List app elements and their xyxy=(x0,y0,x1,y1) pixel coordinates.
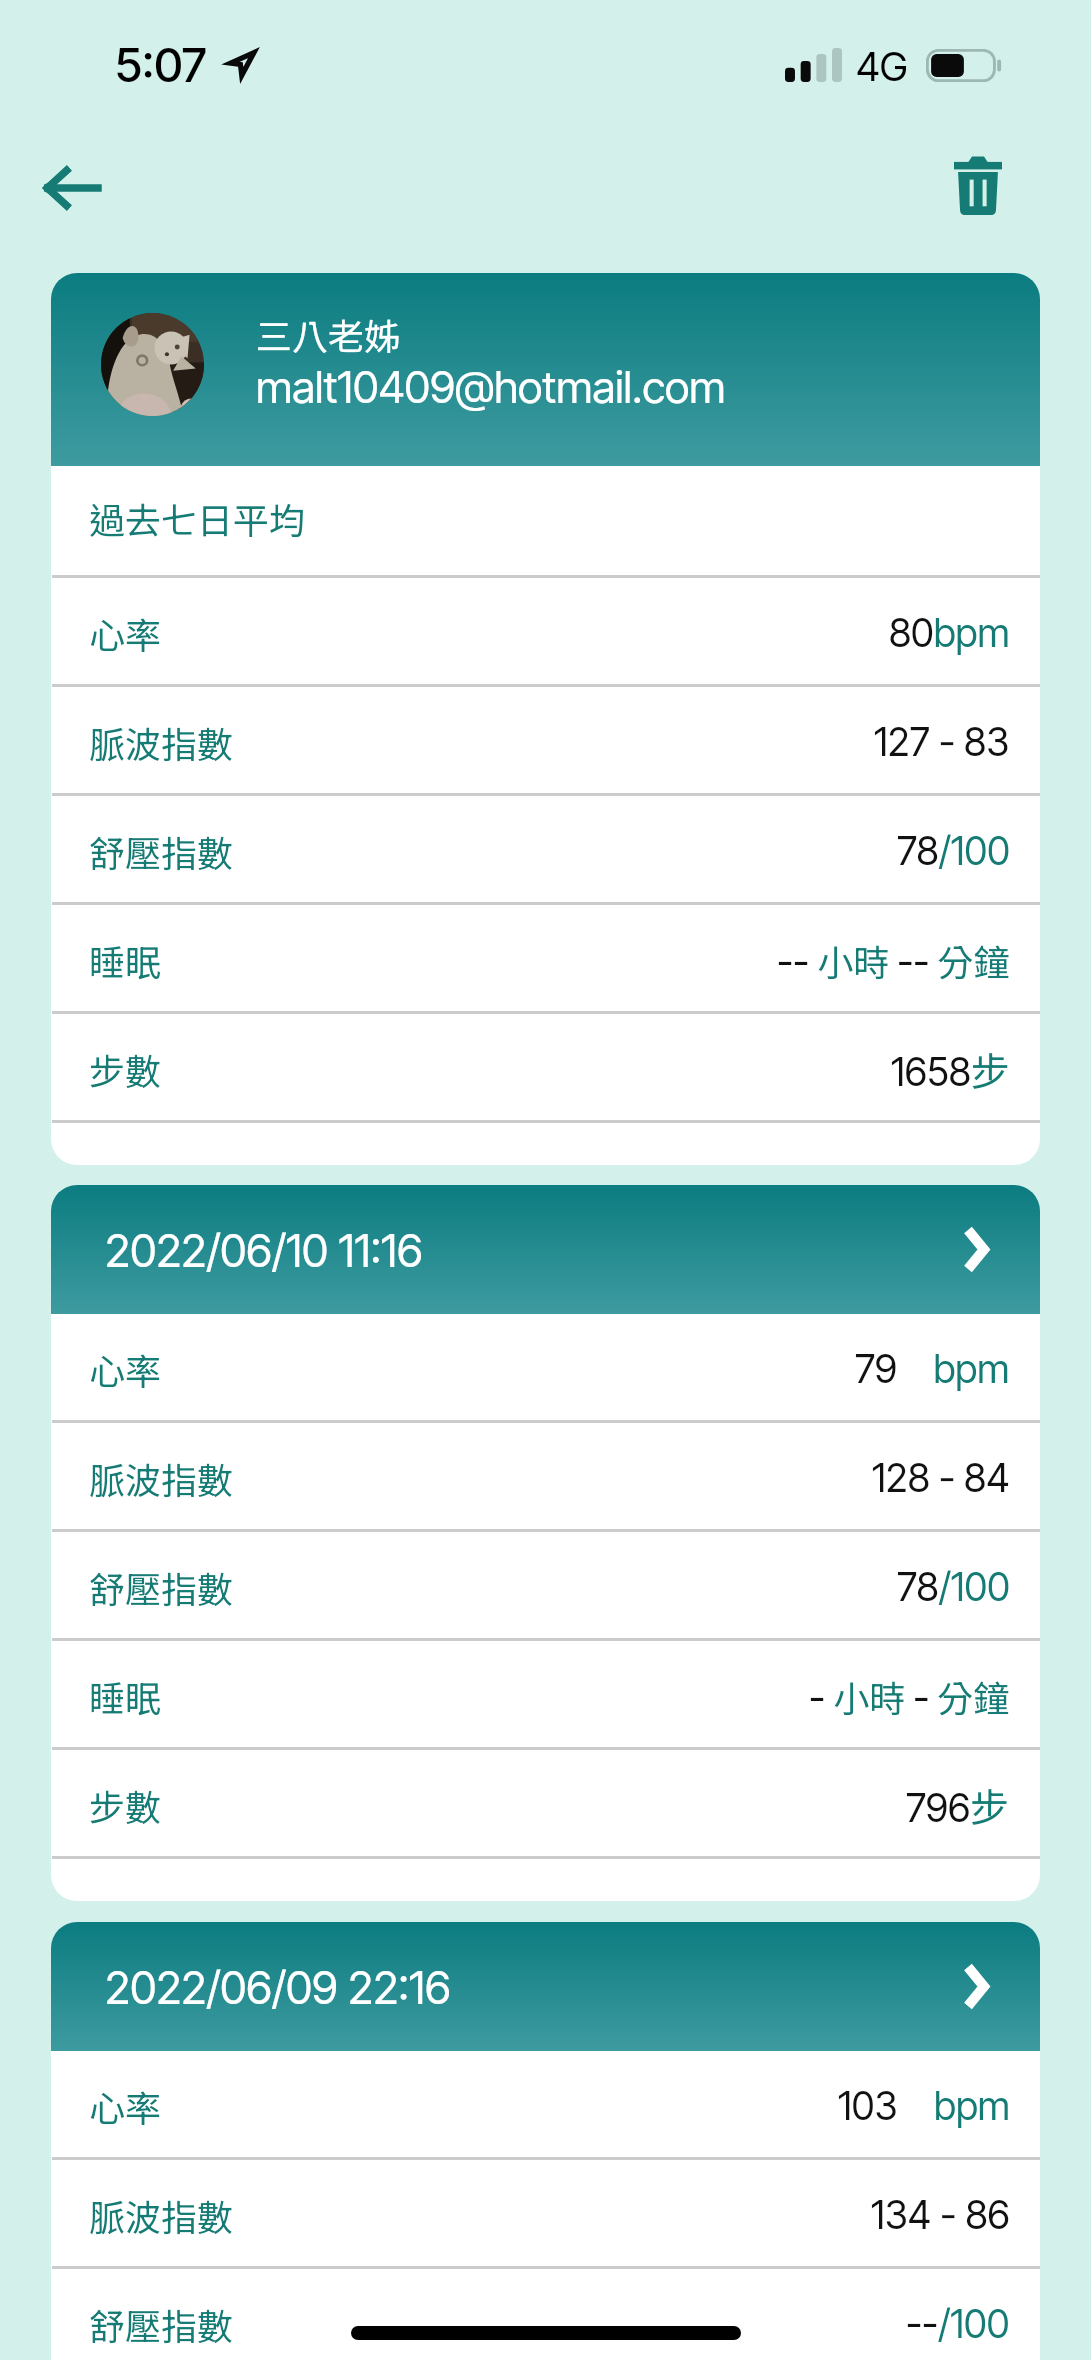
staticText: 1658步 xyxy=(891,1041,1010,1097)
staticText: 脈波指數 xyxy=(89,1452,234,1504)
button[interactable]: 舒壓指數 xyxy=(51,2269,1040,2360)
button[interactable]: 睡眠 xyxy=(51,1641,1040,1750)
button[interactable]: 步數 xyxy=(51,1750,1040,1859)
button[interactable]: 心率 xyxy=(51,1314,1040,1423)
staticText: 心率 xyxy=(89,607,162,659)
staticText: 127 - 83 xyxy=(874,718,1010,765)
staticText: 心率 xyxy=(89,1343,162,1395)
button[interactable]: 舒壓指數 xyxy=(51,1532,1040,1641)
staticText: 步數 xyxy=(89,1043,162,1095)
staticText: 步數 xyxy=(89,1779,162,1831)
staticText: 796步 xyxy=(906,1777,1010,1833)
button[interactable]: 脈波指數 xyxy=(51,687,1040,796)
button[interactable]: 睡眠 xyxy=(51,905,1040,1014)
button[interactable]: 三八老姊 xyxy=(51,273,1040,466)
staticText: 心率 xyxy=(89,2080,162,2132)
staticText: --/100 xyxy=(906,2300,1010,2347)
button[interactable]: Back xyxy=(18,135,124,241)
staticText: 4G xyxy=(856,42,908,90)
staticText: 78/100 xyxy=(897,827,1010,874)
button[interactable]: 2022/06/09 22:16 xyxy=(51,1922,1040,2051)
button[interactable]: 心率 xyxy=(51,578,1040,687)
staticText: 78/100 xyxy=(897,1563,1010,1610)
staticText: 舒壓指數 xyxy=(89,2298,234,2350)
staticText: 脈波指數 xyxy=(89,716,234,768)
staticText: 2022/06/10 11:16 xyxy=(105,1223,423,1277)
staticText: 舒壓指數 xyxy=(89,825,234,877)
staticText: 103 bpm xyxy=(838,2082,1010,2129)
button[interactable]: 2022/06/10 11:16 xyxy=(51,1185,1040,1314)
staticText: malt10409@hotmail.com xyxy=(256,360,726,413)
staticText: 128 - 84 xyxy=(872,1454,1010,1501)
staticText: 脈波指數 xyxy=(89,2189,234,2241)
staticText: 三八老姊 xyxy=(256,308,401,360)
staticText: 睡眠 xyxy=(89,934,162,986)
staticText: 134 - 86 xyxy=(871,2191,1010,2238)
staticText: -- 小時 -- 分鐘 xyxy=(777,934,1010,986)
button[interactable]: 心率 xyxy=(51,2051,1040,2160)
button[interactable]: 脈波指數 xyxy=(51,1423,1040,1532)
staticText: 舒壓指數 xyxy=(89,1561,234,1613)
staticText: - 小時 - 分鐘 xyxy=(809,1670,1010,1722)
button[interactable]: 步數 xyxy=(51,1014,1040,1123)
staticText: 過去七日平均 xyxy=(89,492,306,544)
button[interactable]: Delete xyxy=(933,140,1023,230)
staticText: 2022/06/09 22:16 xyxy=(105,1960,451,2014)
staticText: 睡眠 xyxy=(89,1670,162,1722)
button[interactable]: 舒壓指數 xyxy=(51,796,1040,905)
staticText: 5:07 xyxy=(115,36,207,93)
staticText: 80bpm xyxy=(889,609,1010,656)
button[interactable]: 脈波指數 xyxy=(51,2160,1040,2269)
staticText: 79 bpm xyxy=(855,1345,1010,1392)
